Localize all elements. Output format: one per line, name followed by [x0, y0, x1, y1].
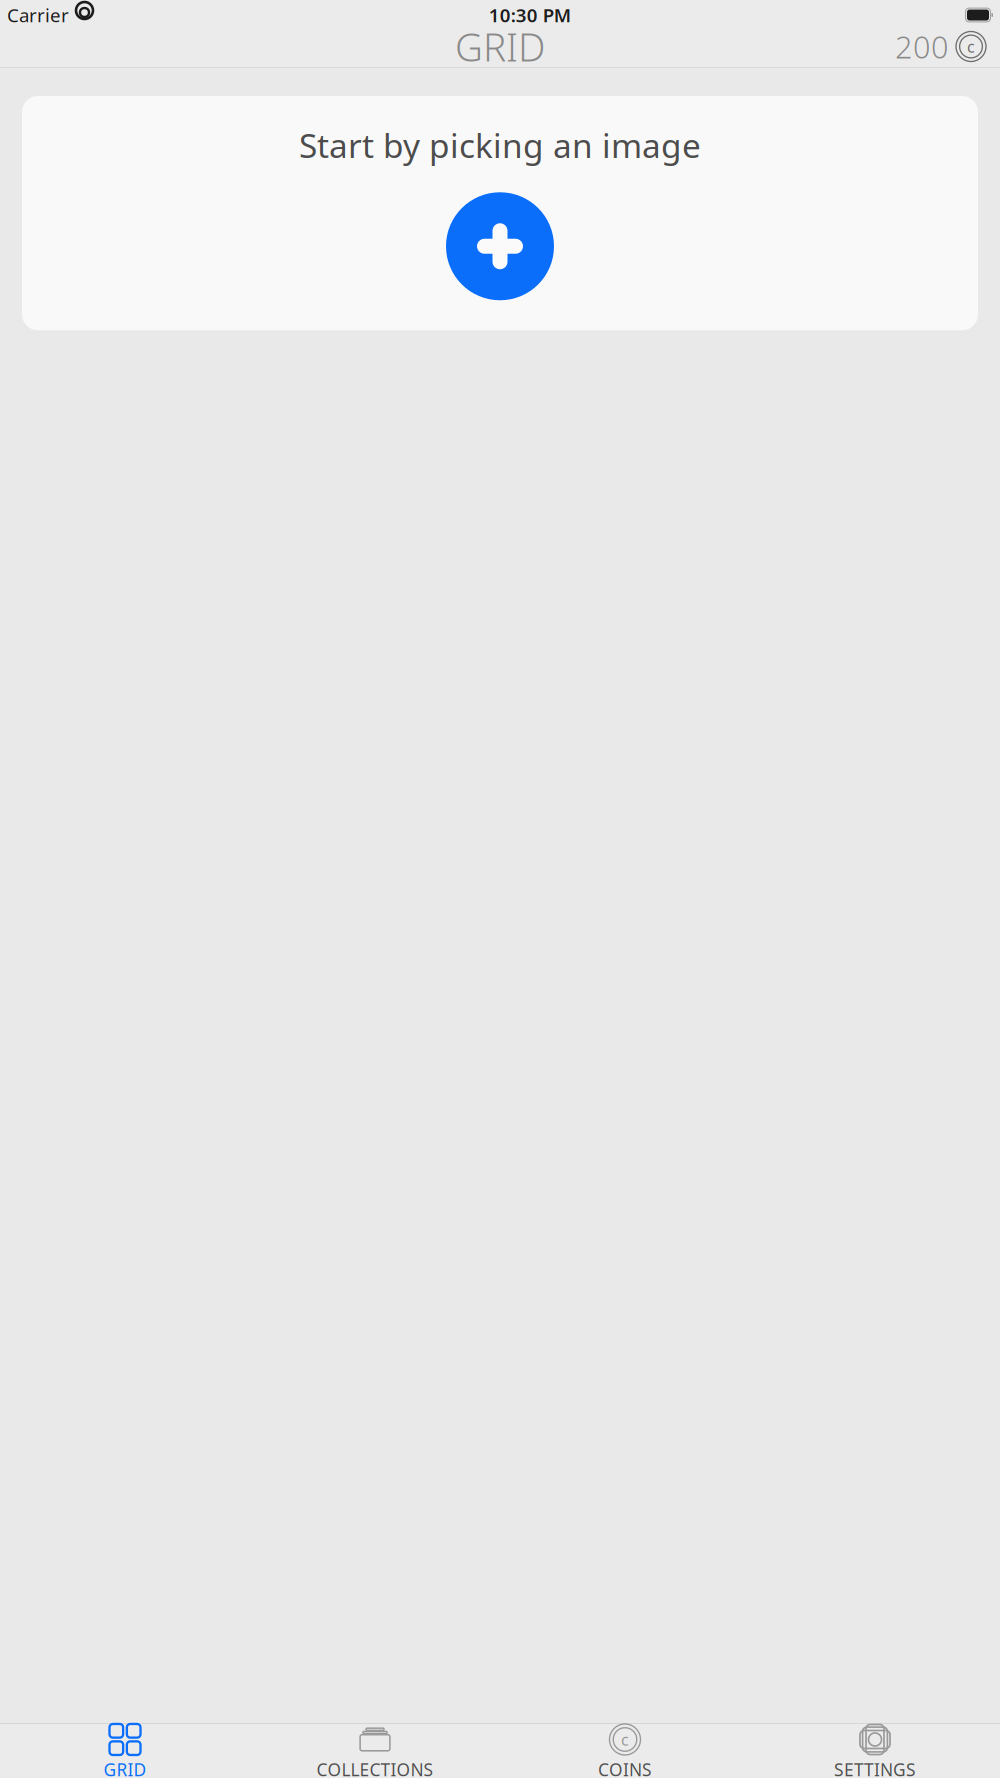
button[interactable]: SETTINGS	[750, 1717, 1000, 1778]
staticText: COINS	[598, 1758, 652, 1778]
staticText: 10:30 PM	[489, 3, 571, 27]
staticText: c	[621, 1729, 629, 1750]
staticText: Start by picking an image	[299, 123, 701, 167]
button[interactable]: Coins: 200	[887, 21, 994, 72]
button[interactable]: c	[500, 1717, 750, 1778]
staticText: SETTINGS	[834, 1758, 916, 1778]
button[interactable]: COLLECTIONS	[250, 1717, 500, 1778]
staticText: COLLECTIONS	[316, 1758, 433, 1778]
staticText: GRID	[103, 1758, 146, 1778]
staticText: GRID	[455, 21, 545, 72]
button[interactable]: GRID	[0, 1717, 250, 1778]
button[interactable]: Pick an image	[446, 192, 554, 300]
staticText: 200	[895, 26, 949, 67]
staticText: Carrier	[7, 3, 69, 27]
staticText: c	[967, 36, 975, 57]
